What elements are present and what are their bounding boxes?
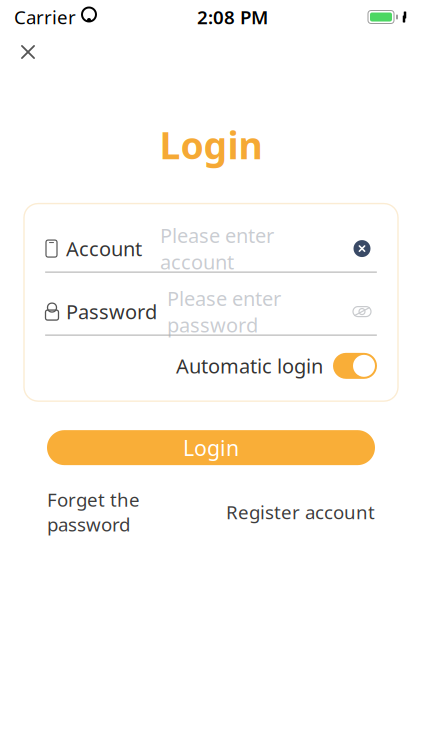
staticText: Carrier [14,5,76,29]
staticText: Register account [226,499,375,524]
staticText: Account [66,235,142,262]
staticText: Password [66,298,157,325]
staticText: Login [183,433,239,462]
button[interactable]: Register account [226,499,375,524]
button[interactable]: Login [47,430,375,465]
button[interactable]: Show password [347,297,377,327]
staticText: 2:08 PM [197,5,268,29]
button[interactable]: Automatic login [333,353,377,379]
button[interactable]: Clear account [347,234,377,264]
staticText: Login [159,120,262,170]
staticText: Please enter account [160,222,274,275]
staticText: Forget the password [47,487,140,537]
button[interactable]: Forget the password [47,487,140,537]
staticText: Please enter password [167,285,281,338]
staticText: Automatic login [176,353,323,379]
button[interactable]: Close [8,32,48,72]
